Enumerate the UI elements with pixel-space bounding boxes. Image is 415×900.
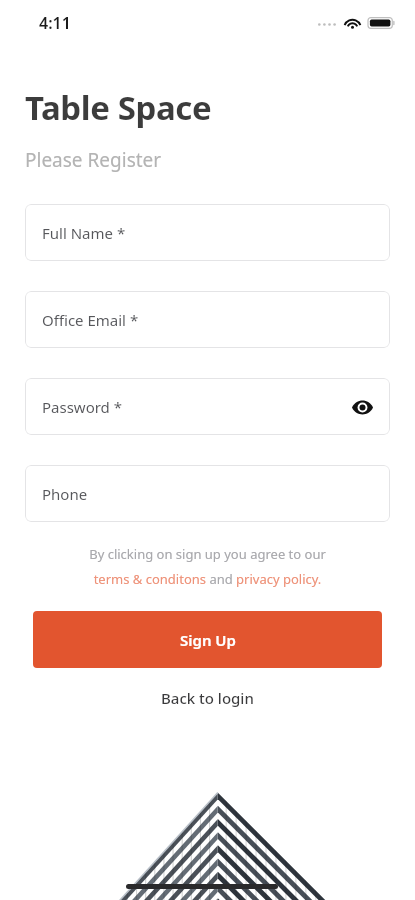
staticText: Password *: [42, 397, 123, 417]
button[interactable]: Phone: [25, 465, 390, 522]
staticText: Please Register: [25, 147, 162, 173]
button[interactable]: Sign Up: [33, 611, 382, 668]
staticText: Table Space: [25, 85, 212, 130]
button[interactable]: Show password: [347, 392, 377, 422]
button[interactable]: Full Name *: [25, 204, 390, 261]
button[interactable]: Back to login: [147, 681, 268, 715]
staticText: terms & conditons and privacy policy.: [0, 570, 415, 588]
staticText: Phone: [42, 484, 88, 504]
staticText: By clicking on sign up you agree to our: [0, 545, 415, 563]
staticText: Office Email *: [42, 310, 139, 330]
button[interactable]: Office Email *: [25, 291, 390, 348]
staticText: Back to login: [161, 688, 254, 708]
staticText: 4:11: [39, 12, 71, 34]
button[interactable]: Password *: [25, 378, 390, 435]
staticText: Sign Up: [180, 630, 236, 650]
staticText: Full Name *: [42, 223, 126, 243]
